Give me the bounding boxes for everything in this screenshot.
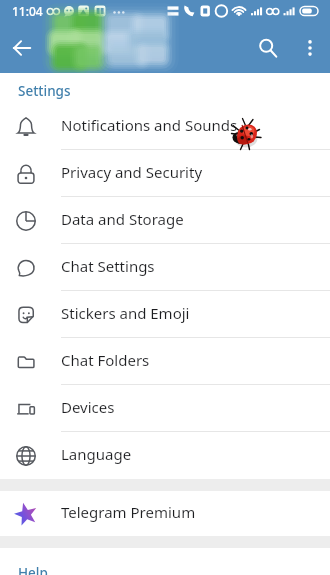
staticText: Privacy and Security xyxy=(61,162,203,182)
button[interactable]: Privacy and Security xyxy=(0,150,330,197)
staticText: Language xyxy=(61,444,132,464)
staticText: Devices xyxy=(61,397,115,417)
staticText: Telegram Premium xyxy=(61,502,196,522)
staticText: Help xyxy=(18,564,48,575)
button[interactable]: Search xyxy=(246,22,290,73)
staticText: Settings xyxy=(18,82,71,100)
button[interactable]: Chat Settings xyxy=(0,244,330,291)
staticText: Data and Storage xyxy=(61,209,184,229)
button[interactable]: More options xyxy=(290,22,330,73)
staticText: Notifications and Sounds xyxy=(61,115,238,135)
button[interactable]: Notifications and Sounds xyxy=(0,103,330,150)
button[interactable]: Back xyxy=(0,22,44,73)
staticText: Chat Settings xyxy=(61,256,155,276)
button[interactable]: Devices xyxy=(0,385,330,432)
staticText: Chat Folders xyxy=(61,350,150,370)
staticText: 11:04 xyxy=(12,3,43,19)
button[interactable]: Stickers and Emoji xyxy=(0,291,330,338)
button[interactable]: Data and Storage xyxy=(0,197,330,244)
staticText: Stickers and Emoji xyxy=(61,303,190,323)
button[interactable]: Telegram Premium xyxy=(0,491,330,536)
button[interactable]: Chat Folders xyxy=(0,338,330,385)
button[interactable]: Language xyxy=(0,432,330,479)
